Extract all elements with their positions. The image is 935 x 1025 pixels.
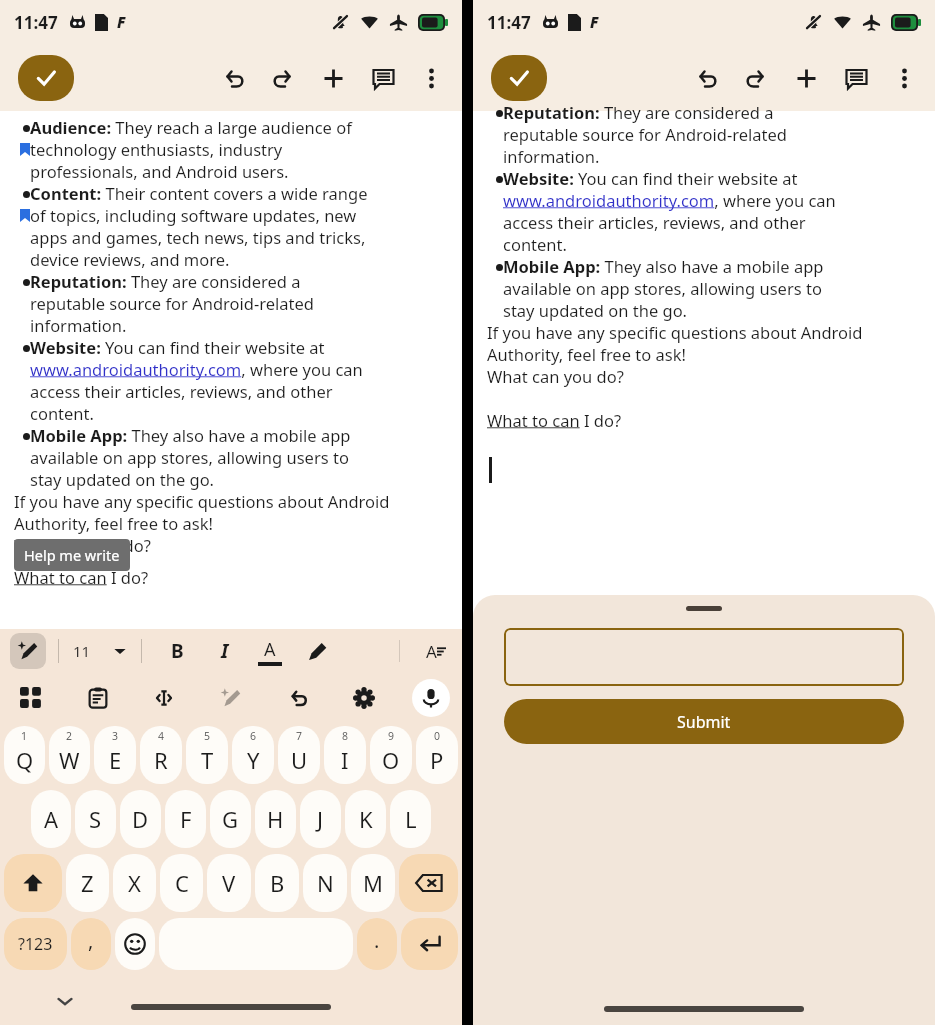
button[interactable]: N — [303, 854, 347, 912]
button[interactable]: Emoji — [115, 918, 155, 970]
button[interactable]: Redo — [266, 61, 300, 95]
button[interactable]: Undo — [689, 61, 723, 95]
button[interactable]: D — [120, 790, 161, 848]
button[interactable]: Apps — [12, 679, 50, 717]
staticText: K — [359, 804, 373, 834]
staticText: 3 — [112, 729, 119, 743]
button[interactable]: B — [255, 854, 299, 912]
button[interactable]: Write assist — [212, 679, 250, 717]
button[interactable]: Done — [18, 55, 74, 101]
staticText: Y — [247, 745, 260, 775]
button[interactable]: , — [71, 918, 111, 970]
button[interactable]: Highlight — [302, 636, 332, 666]
button[interactable]: ?123 — [4, 918, 67, 970]
button[interactable]: 7 — [278, 726, 320, 784]
button[interactable]: . — [357, 918, 397, 970]
button[interactable]: Add — [316, 61, 350, 95]
staticText: 1 — [21, 729, 28, 743]
staticText: information. — [503, 145, 600, 167]
button[interactable]: X — [113, 854, 156, 912]
staticText: Content: Their content covers a wide ran… — [30, 182, 368, 204]
button[interactable]: A — [31, 790, 71, 848]
button[interactable]: G — [210, 790, 251, 848]
button[interactable]: Submit — [504, 699, 904, 744]
staticText: 11:47 — [14, 11, 58, 34]
staticText: Website: You can find their website at — [503, 167, 798, 189]
button[interactable]: I — [210, 636, 240, 666]
button[interactable]: Z — [66, 854, 109, 912]
staticText: Reputation: They are considered a — [30, 270, 301, 292]
button[interactable]: Help me write — [10, 633, 46, 669]
staticText: 0 — [434, 729, 441, 743]
button[interactable]: 11 — [73, 641, 127, 661]
button[interactable]: 6 — [232, 726, 274, 784]
button[interactable]: Undo — [216, 61, 250, 95]
staticText: N — [317, 868, 334, 898]
staticText: O — [382, 745, 400, 775]
staticText: R — [154, 745, 168, 775]
button[interactable]: 9 — [370, 726, 412, 784]
button[interactable]: Text color — [258, 637, 282, 666]
staticText: U — [291, 745, 308, 775]
staticText: B — [171, 638, 184, 664]
button[interactable]: Space — [159, 918, 353, 970]
staticText: available on app stores, allowing users … — [503, 277, 822, 299]
staticText: M — [363, 868, 383, 898]
button[interactable]: J — [300, 790, 341, 848]
staticText: Submit — [677, 711, 731, 733]
button[interactable]: 3 — [94, 726, 136, 784]
button[interactable]: 5 — [186, 726, 228, 784]
button[interactable]: Voice input — [412, 679, 450, 717]
staticText: 2 — [66, 729, 73, 743]
staticText: L — [405, 804, 417, 834]
staticText: Z — [81, 868, 94, 898]
button[interactable]: Enter — [401, 918, 458, 970]
button[interactable]: K — [345, 790, 386, 848]
button[interactable]: Settings — [345, 679, 383, 717]
staticText: A — [44, 804, 59, 834]
button[interactable]: Help me write — [14, 539, 130, 571]
button[interactable]: M — [351, 854, 395, 912]
staticText: G — [222, 804, 239, 834]
button[interactable]: Comment — [366, 61, 400, 95]
button[interactable]: F — [165, 790, 206, 848]
button[interactable]: Done — [491, 55, 547, 101]
staticText: ?123 — [18, 933, 53, 955]
button[interactable]: L — [390, 790, 431, 848]
button[interactable]: Backspace — [399, 854, 458, 912]
button[interactable]: S — [75, 790, 116, 848]
button[interactable]: Cursor move — [145, 679, 183, 717]
button[interactable]: Comment — [839, 61, 873, 95]
button[interactable]: Hide keyboard — [52, 988, 78, 1014]
button[interactable]: Text field — [504, 628, 904, 686]
staticText: A — [426, 640, 437, 663]
button[interactable]: C — [160, 854, 203, 912]
button[interactable]: Clipboard — [79, 679, 117, 717]
staticText: I — [341, 745, 349, 775]
button[interactable]: Undo — [279, 679, 317, 717]
staticText: If you have any specific questions about… — [14, 490, 390, 512]
staticText: What to can I do? — [14, 566, 149, 588]
button[interactable]: 2 — [49, 726, 90, 784]
button[interactable]: 8 — [324, 726, 366, 784]
button[interactable]: Add — [789, 61, 823, 95]
staticText: What can you do? — [487, 365, 624, 387]
staticText: A — [264, 637, 276, 662]
button[interactable]: More options — [887, 61, 921, 95]
button[interactable]: H — [255, 790, 296, 848]
staticText: available on app stores, allowing users … — [30, 446, 349, 468]
button[interactable]: 0 — [416, 726, 458, 784]
staticText: reputable source for Android-related — [503, 123, 787, 145]
staticText: device reviews, and more. — [30, 248, 230, 270]
button[interactable]: Redo — [739, 61, 773, 95]
button[interactable]: More options — [414, 61, 448, 95]
staticText: Mobile App: They also have a mobile app — [30, 424, 351, 446]
button[interactable]: Shift — [4, 854, 62, 912]
button[interactable]: Paragraph style — [420, 635, 452, 667]
staticText: V — [222, 868, 236, 898]
button[interactable]: V — [207, 854, 251, 912]
staticText: 7 — [296, 729, 303, 743]
button[interactable]: 4 — [140, 726, 182, 784]
button[interactable]: B — [162, 636, 192, 666]
button[interactable]: 1 — [4, 726, 45, 784]
